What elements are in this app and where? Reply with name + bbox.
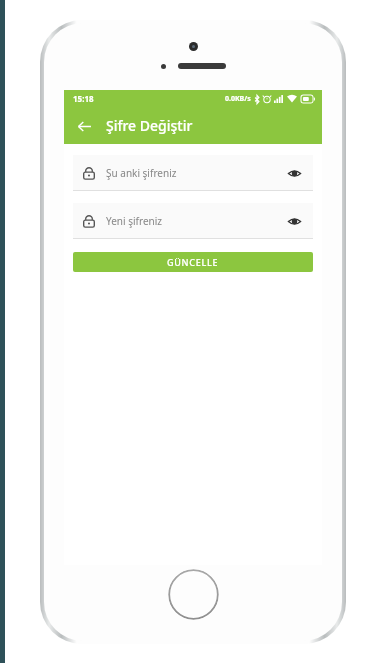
staticText: Yeni şifreniz (106, 214, 281, 228)
button[interactable]: Show password (281, 208, 307, 234)
button[interactable]: Back (71, 113, 97, 139)
button[interactable]: Şu anki şifreniz (73, 155, 313, 191)
staticText: 15:18 (73, 93, 94, 104)
button[interactable]: GÜNCELLE (73, 252, 313, 272)
button[interactable]: Show password (281, 160, 307, 186)
button[interactable]: Yeni şifreniz (73, 203, 313, 239)
staticText: 0.0KB/s (225, 94, 251, 104)
staticText: Şu anki şifreniz (106, 166, 281, 180)
staticText: Şifre Değiştir (106, 116, 193, 135)
staticText: GÜNCELLE (167, 256, 219, 268)
